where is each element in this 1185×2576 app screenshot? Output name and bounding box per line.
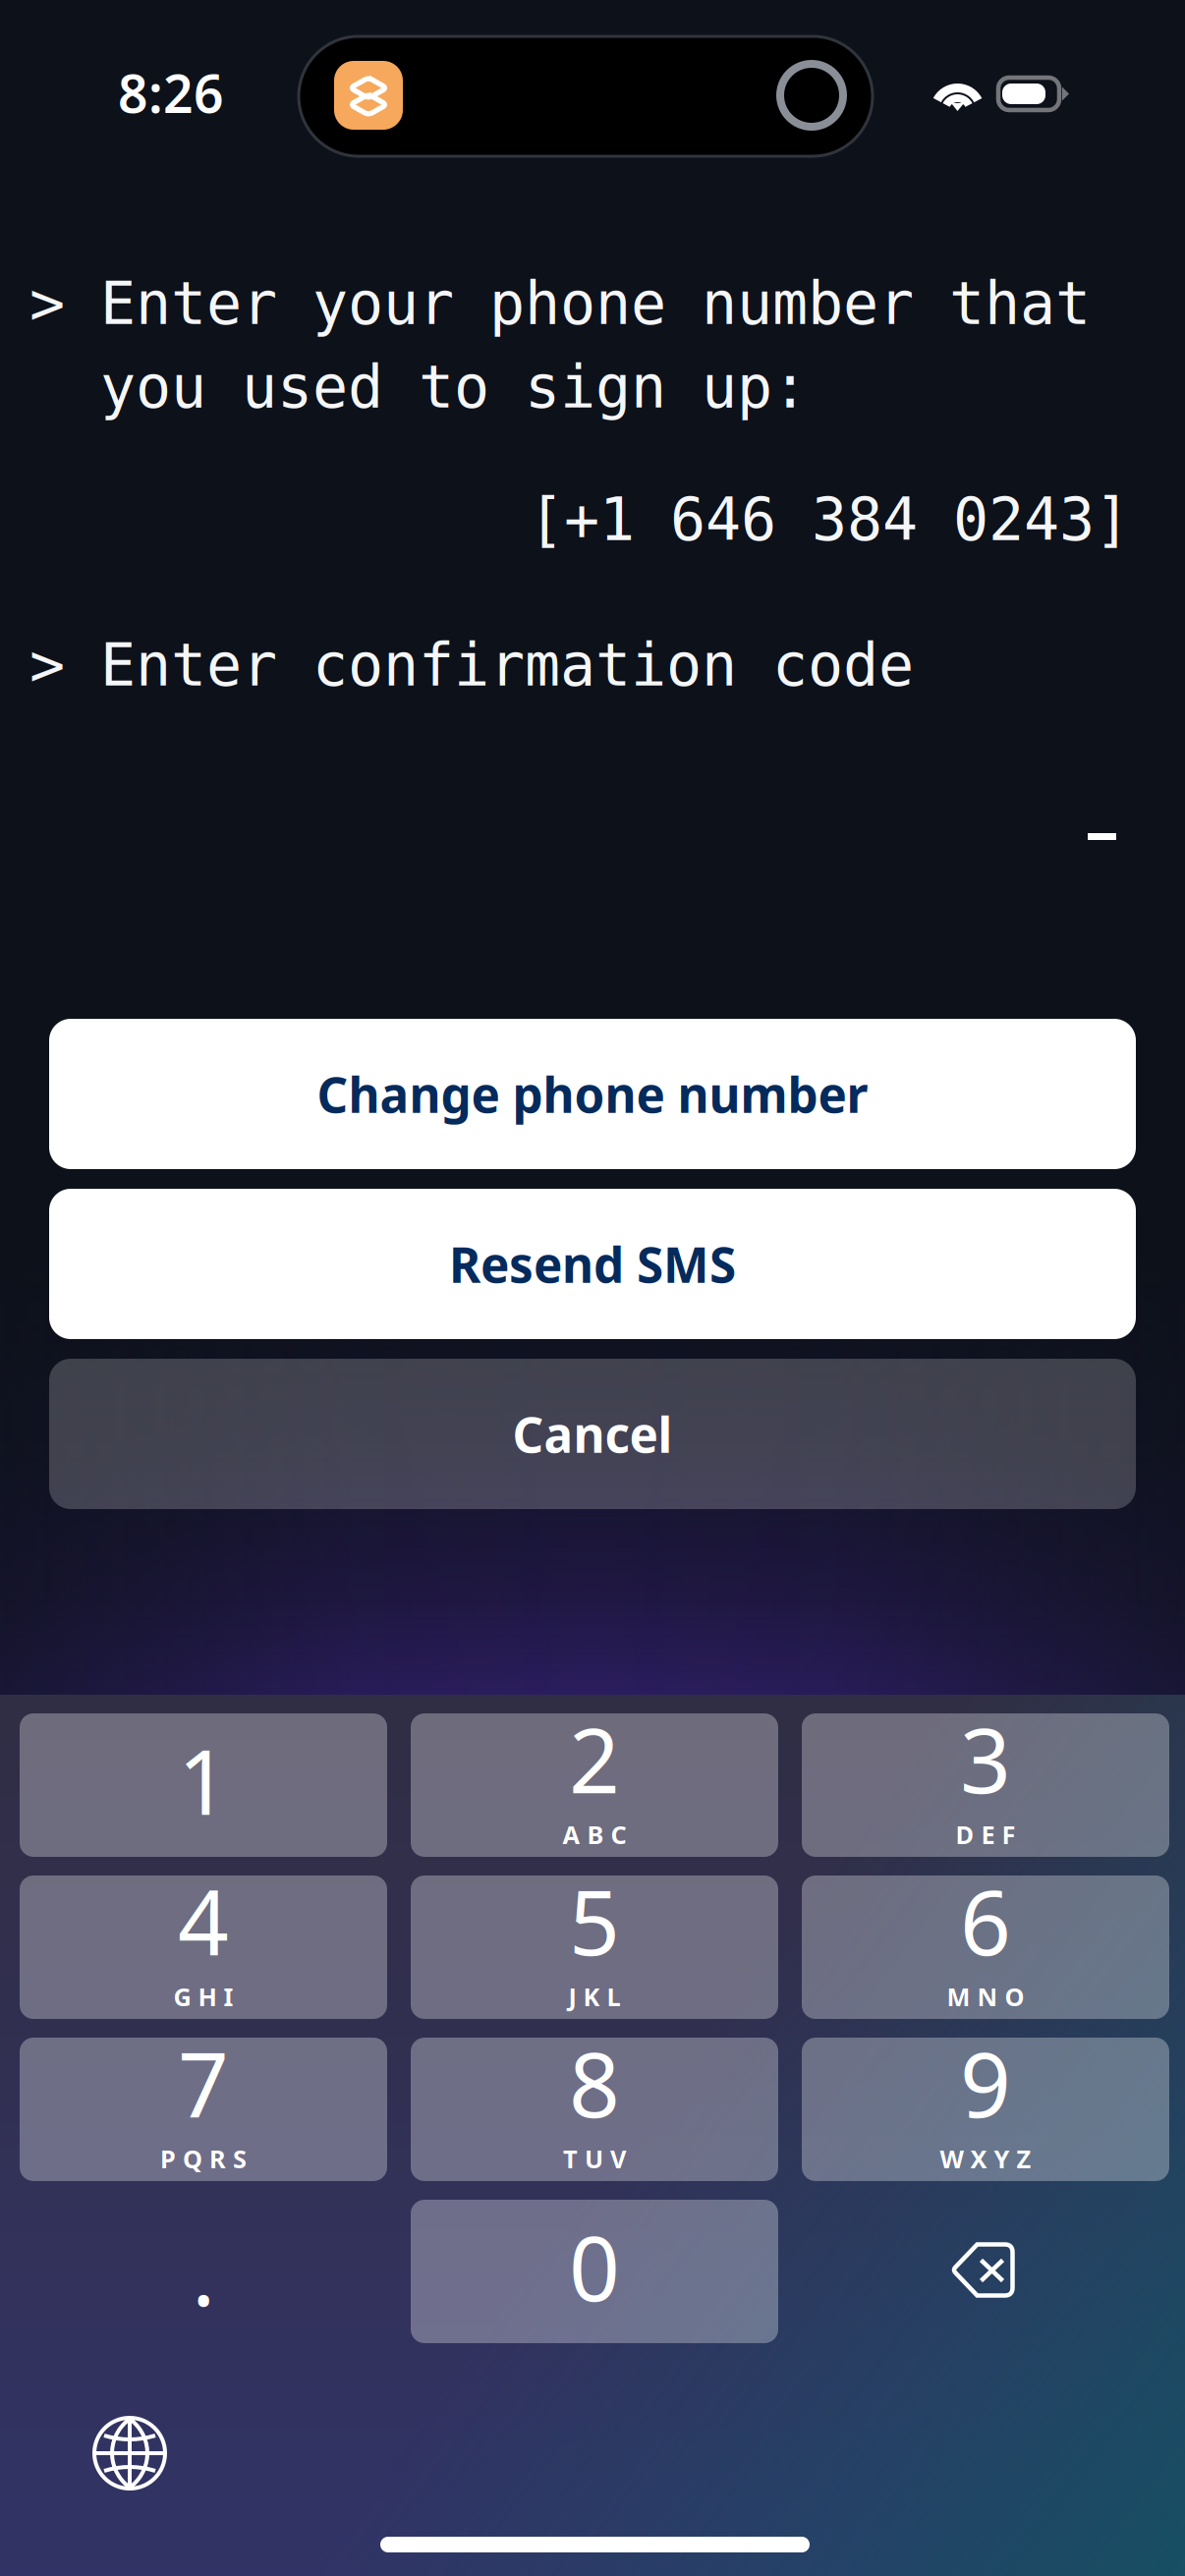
staticText: > Enter confirmation code <box>29 632 914 699</box>
staticText: 9 <box>960 2024 1011 2142</box>
button[interactable]: Cancel <box>49 1359 1136 1509</box>
button[interactable]: 6 <box>802 1876 1169 2019</box>
staticText: 7 <box>178 2024 229 2142</box>
staticText: 6 <box>960 1862 1011 1980</box>
staticText: you used to sign up: <box>29 354 808 421</box>
staticText: G H I <box>173 1980 233 2013</box>
staticText: J K L <box>568 1980 621 2013</box>
staticText: 3 <box>960 1700 1011 1818</box>
button[interactable]: . <box>20 2200 387 2343</box>
staticText: M N O <box>947 1980 1024 2013</box>
staticText: [+1 646 384 0243] <box>529 486 1130 553</box>
staticText: . <box>192 2212 215 2331</box>
staticText: Change phone number <box>317 1062 868 1126</box>
button[interactable]: Delete <box>802 2200 1169 2343</box>
staticText: 4 <box>178 1862 229 1980</box>
button[interactable]: 0 <box>411 2200 778 2343</box>
button[interactable]: 2 <box>411 1713 778 1857</box>
staticText: T U V <box>563 2142 626 2175</box>
staticText: 5 <box>569 1862 620 1980</box>
button[interactable]: 4 <box>20 1876 387 2019</box>
staticText: 2 <box>569 1700 620 1818</box>
staticText: 8:26 <box>118 58 224 128</box>
staticText: A B C <box>563 1818 626 1851</box>
button[interactable]: Change phone number <box>49 1019 1136 1169</box>
button[interactable]: 5 <box>411 1876 778 2019</box>
staticText: D E F <box>956 1818 1016 1851</box>
staticText: 8 <box>569 2024 620 2142</box>
staticText: Resend SMS <box>449 1232 736 1296</box>
button[interactable]: 8 <box>411 2038 778 2181</box>
staticText: 0 <box>569 2207 620 2326</box>
button[interactable]: Next keyboard <box>94 2418 165 2489</box>
staticText: 1 <box>178 1721 229 1839</box>
staticText: Cancel <box>512 1402 673 1466</box>
button[interactable]: 1 <box>20 1713 387 1857</box>
staticText: > Enter your phone number that <box>29 270 1091 337</box>
button[interactable]: Resend SMS <box>49 1189 1136 1339</box>
button[interactable]: 9 <box>802 2038 1169 2181</box>
button[interactable]: 3 <box>802 1713 1169 1857</box>
staticText: W X Y Z <box>940 2142 1031 2175</box>
staticText: P Q R S <box>160 2142 247 2175</box>
button[interactable]: 7 <box>20 2038 387 2181</box>
